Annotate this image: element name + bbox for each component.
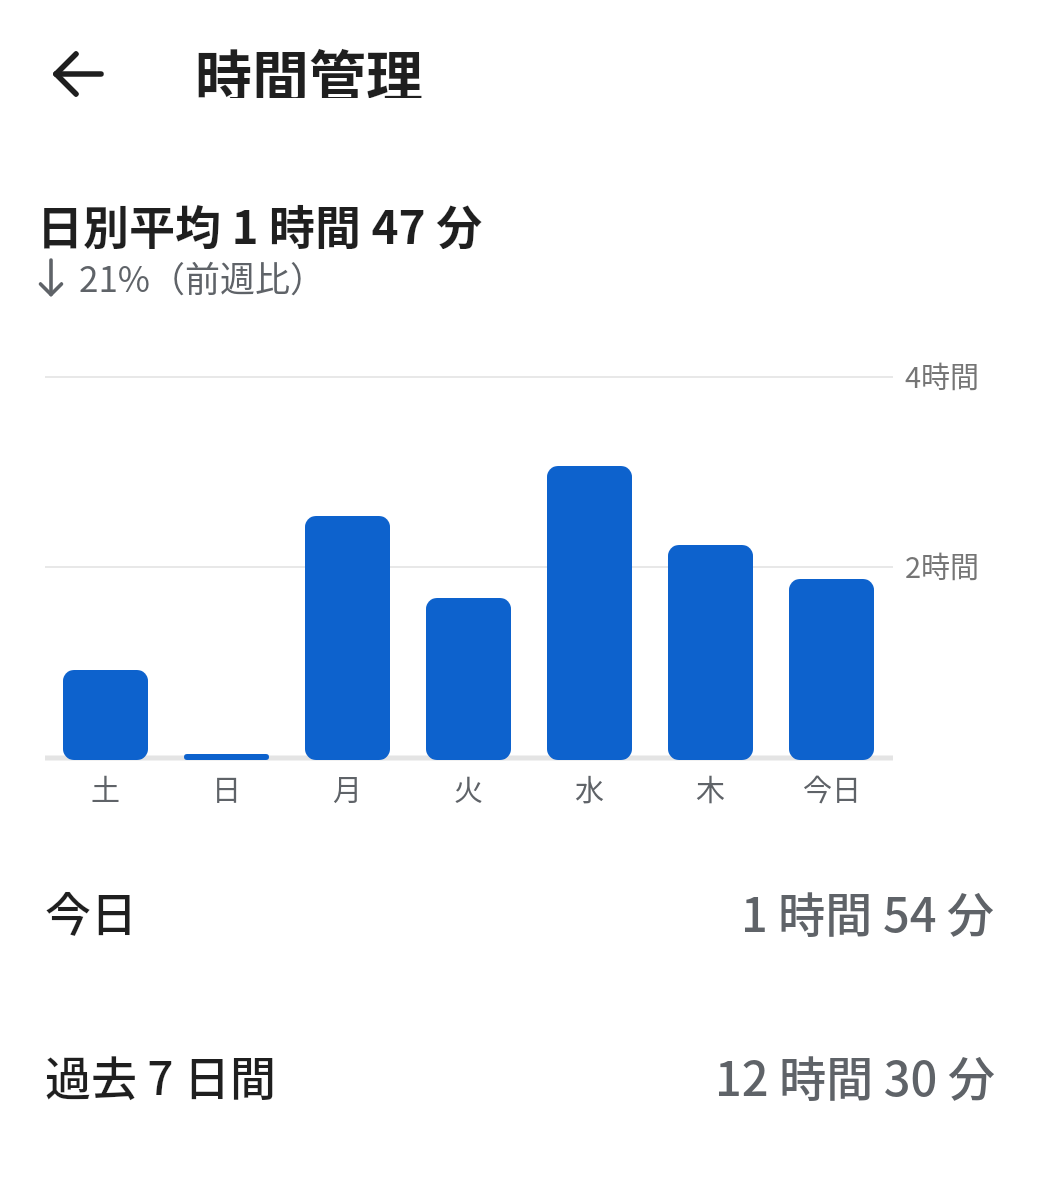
staticText: 時間管理 <box>195 32 423 98</box>
staticText: 水 <box>575 767 605 809</box>
button[interactable]: 過去 7 日間 <box>0 1014 1050 1136</box>
staticText: 日 <box>212 767 242 809</box>
staticText: 土 <box>91 767 121 809</box>
button[interactable]: 今日 <box>0 850 1050 972</box>
staticText: 21%（前週比） <box>79 251 326 297</box>
staticText: 12 時間 30 分 <box>715 1041 995 1109</box>
staticText: 月 <box>333 767 363 809</box>
staticText: 今日 <box>45 878 137 945</box>
staticText: 1 時間 54 分 <box>741 877 995 945</box>
button[interactable] <box>36 32 120 116</box>
staticText: 火 <box>454 767 484 809</box>
staticText: 2時間 <box>905 544 980 586</box>
staticText: 日別平均 1 時間 47 分 <box>37 191 483 249</box>
staticText: 木 <box>696 767 726 809</box>
staticText: 4時間 <box>905 354 980 396</box>
staticText: 過去 7 日間 <box>45 1042 276 1109</box>
staticText: 今日 <box>803 767 862 809</box>
